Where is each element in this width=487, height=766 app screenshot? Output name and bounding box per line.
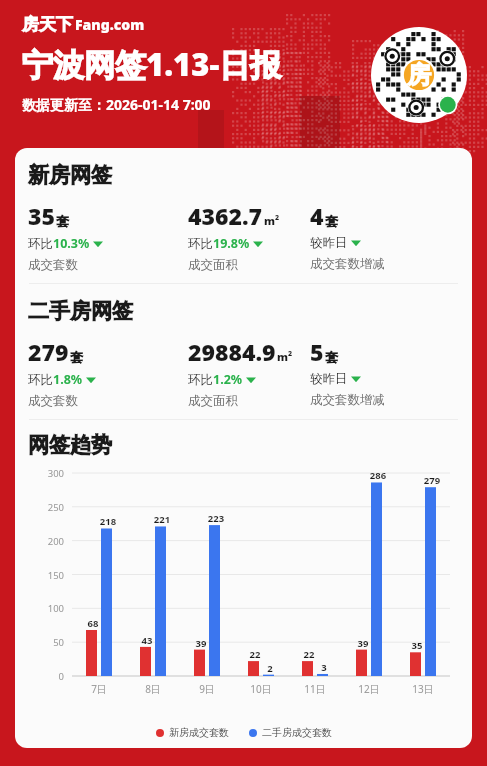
staticText: 8日 bbox=[133, 682, 173, 696]
staticText: 10.3% bbox=[53, 235, 90, 252]
staticText: 二手房网签 bbox=[28, 298, 133, 324]
staticText: 100 bbox=[28, 602, 64, 615]
staticText: 218 bbox=[95, 515, 121, 528]
staticText: 成交套数增减 bbox=[310, 392, 385, 408]
staticText: 50 bbox=[28, 636, 64, 649]
staticText: m bbox=[264, 213, 275, 228]
staticText: 二手房成交套数 bbox=[262, 726, 332, 739]
staticText: 2 bbox=[257, 662, 283, 675]
staticText: 宁波网签1.13-日报 bbox=[22, 43, 282, 85]
staticText: 300 bbox=[28, 467, 64, 480]
staticText: 新房成交套数 bbox=[169, 726, 229, 739]
staticText: 4362.7 bbox=[188, 200, 263, 231]
staticText: 12日 bbox=[349, 682, 389, 696]
staticText: 10日 bbox=[241, 682, 281, 696]
staticText: 成交面积 bbox=[188, 393, 238, 409]
staticText: 0 bbox=[28, 670, 64, 683]
button[interactable]: 29884.9 bbox=[188, 336, 293, 409]
staticText: 4 bbox=[310, 200, 324, 231]
staticText: 9日 bbox=[187, 682, 227, 696]
staticText: 套 bbox=[70, 349, 83, 365]
staticText: 35 bbox=[28, 200, 55, 231]
staticText: 数据更新至：2026-01-14 7:00 bbox=[22, 95, 211, 114]
staticText: 35 bbox=[404, 639, 430, 652]
staticText: 2 bbox=[288, 349, 293, 359]
staticText: Fang.com bbox=[75, 15, 145, 34]
staticText: 286 bbox=[365, 469, 391, 482]
staticText: 房 bbox=[407, 60, 431, 90]
button[interactable]: 新房成交套数 bbox=[156, 726, 229, 739]
staticText: 成交套数增减 bbox=[310, 256, 385, 272]
staticText: 221 bbox=[149, 513, 175, 526]
staticText: 39 bbox=[188, 637, 214, 650]
staticText: 223 bbox=[203, 512, 229, 525]
staticText: 成交套数 bbox=[28, 393, 78, 409]
staticText: 套 bbox=[56, 213, 69, 229]
staticText: 较昨日 bbox=[310, 371, 348, 387]
staticText: 3 bbox=[311, 661, 337, 674]
button[interactable]: 4 bbox=[310, 200, 385, 272]
staticText: 5 bbox=[310, 336, 324, 367]
staticText: 43 bbox=[134, 634, 160, 647]
staticText: 1.2% bbox=[213, 371, 243, 388]
staticText: 68 bbox=[80, 617, 106, 630]
staticText: 环比 bbox=[188, 236, 213, 252]
staticText: 环比 bbox=[28, 236, 53, 252]
button[interactable]: 4362.7 bbox=[188, 200, 280, 273]
staticText: 房天下 bbox=[22, 14, 73, 35]
staticText: 11日 bbox=[295, 682, 335, 696]
button[interactable]: 35 bbox=[28, 200, 103, 273]
staticText: 成交面积 bbox=[188, 257, 238, 273]
staticText: 环比 bbox=[188, 372, 213, 388]
staticText: 较昨日 bbox=[310, 235, 348, 251]
staticText: 200 bbox=[28, 535, 64, 548]
staticText: 22 bbox=[242, 648, 268, 661]
staticText: 250 bbox=[28, 501, 64, 514]
staticText: 13日 bbox=[403, 682, 443, 696]
staticText: 套 bbox=[325, 213, 338, 229]
staticText: 279 bbox=[419, 474, 445, 487]
button[interactable]: 二手房成交套数 bbox=[249, 726, 332, 739]
staticText: 网签趋势 bbox=[28, 432, 112, 458]
staticText: 39 bbox=[350, 637, 376, 650]
staticText: 19.8% bbox=[213, 235, 250, 252]
staticText: 150 bbox=[28, 569, 64, 582]
staticText: 29884.9 bbox=[188, 336, 276, 367]
staticText: 1.8% bbox=[53, 371, 83, 388]
button[interactable]: 扫码二维码 bbox=[371, 27, 467, 123]
staticText: 套 bbox=[325, 349, 338, 365]
staticText: 2 bbox=[275, 213, 280, 223]
staticText: m bbox=[277, 349, 288, 364]
staticText: 环比 bbox=[28, 372, 53, 388]
staticText: 成交套数 bbox=[28, 257, 78, 273]
staticText: 22 bbox=[296, 648, 322, 661]
button[interactable]: 279 bbox=[28, 336, 96, 409]
staticText: 新房网签 bbox=[28, 162, 112, 188]
staticText: 279 bbox=[28, 336, 69, 367]
staticText: 7日 bbox=[79, 682, 119, 696]
button[interactable]: 5 bbox=[310, 336, 385, 408]
